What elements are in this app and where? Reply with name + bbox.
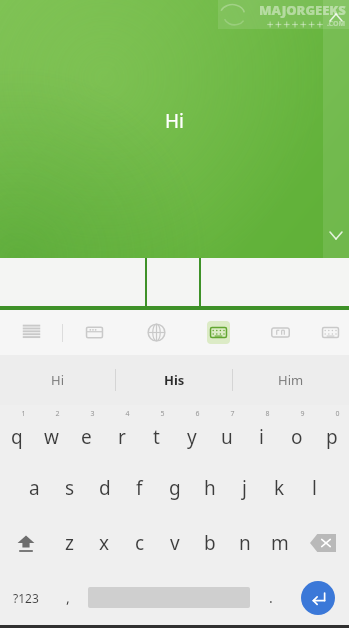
button[interactable]: g xyxy=(157,460,192,515)
staticText: z xyxy=(65,530,74,556)
button[interactable]: Scroll up xyxy=(325,6,347,28)
button[interactable]: Space xyxy=(84,570,254,625)
button[interactable]: Hi xyxy=(0,0,349,258)
button[interactable]: 0 xyxy=(314,405,349,460)
button[interactable]: b xyxy=(192,515,227,570)
button[interactable]: k xyxy=(262,460,297,515)
button[interactable]: z xyxy=(52,515,87,570)
staticText: 7 xyxy=(230,409,235,419)
button[interactable]: Enter xyxy=(287,570,349,625)
button[interactable]: Language xyxy=(125,310,187,355)
staticText: Hi xyxy=(165,108,184,134)
button[interactable]: j xyxy=(227,460,262,515)
staticText: d xyxy=(99,475,111,501)
button[interactable]: 1 xyxy=(0,405,34,460)
button[interactable]: h xyxy=(192,460,227,515)
staticText: p xyxy=(326,424,338,450)
staticText: MAJORGEEKS xyxy=(259,1,346,19)
button[interactable]: s xyxy=(52,460,87,515)
staticText: i xyxy=(259,424,264,450)
staticText: k xyxy=(274,475,285,501)
staticText: 4 xyxy=(125,409,130,419)
button[interactable]: 3 xyxy=(69,405,104,460)
staticText: 1 xyxy=(21,409,26,419)
button[interactable]: 5 xyxy=(139,405,174,460)
button[interactable]: Shift xyxy=(0,515,52,570)
button[interactable]: Backspace xyxy=(297,515,349,570)
button[interactable]: Menu xyxy=(0,310,62,355)
staticText: q xyxy=(11,424,23,450)
button[interactable]: f xyxy=(122,460,157,515)
staticText: . xyxy=(269,588,273,607)
staticText: ?123 xyxy=(13,590,39,606)
staticText: .COM xyxy=(327,19,346,29)
button[interactable]: Function keys xyxy=(249,310,311,355)
button[interactable]: 6 xyxy=(174,405,209,460)
staticText: w xyxy=(44,424,59,450)
staticText: o xyxy=(291,424,303,450)
button[interactable]: His xyxy=(116,355,232,405)
staticText: n xyxy=(239,530,251,556)
button[interactable]: 8 xyxy=(244,405,279,460)
button[interactable]: x xyxy=(87,515,122,570)
button[interactable]: Him xyxy=(233,355,349,405)
staticText: v xyxy=(170,530,180,556)
button[interactable]: 2 xyxy=(34,405,69,460)
button[interactable]: m xyxy=(262,515,297,570)
staticText: a xyxy=(29,475,40,501)
button[interactable]: c xyxy=(122,515,157,570)
staticText: His xyxy=(164,371,185,389)
staticText: 3 xyxy=(90,409,95,419)
button[interactable]: 9 xyxy=(279,405,314,460)
staticText: , xyxy=(66,588,70,607)
button[interactable]: 7 xyxy=(209,405,244,460)
staticText: t xyxy=(153,424,160,450)
button[interactable]: Comma xyxy=(51,570,84,625)
button[interactable]: a xyxy=(17,460,52,515)
staticText: m xyxy=(271,530,289,556)
staticText: u xyxy=(221,424,233,450)
staticText: b xyxy=(204,530,216,556)
staticText: 8 xyxy=(265,409,270,419)
button[interactable]: Period xyxy=(254,570,287,625)
staticText: s xyxy=(65,475,75,501)
button[interactable]: v xyxy=(157,515,192,570)
button[interactable]: Hi xyxy=(0,355,115,405)
staticText: Hi xyxy=(51,371,64,389)
button[interactable]: d xyxy=(87,460,122,515)
staticText: 0 xyxy=(335,409,340,419)
staticText: l xyxy=(312,475,317,501)
button[interactable]: ?123 xyxy=(0,570,51,625)
staticText: h xyxy=(204,475,216,501)
button[interactable]: Clipboard xyxy=(63,310,125,355)
button[interactable]: Scroll down xyxy=(325,224,347,246)
button[interactable]: 4 xyxy=(104,405,139,460)
staticText: 2 xyxy=(55,409,60,419)
staticText: 9 xyxy=(300,409,305,419)
button[interactable]: l xyxy=(297,460,332,515)
staticText: Him xyxy=(278,371,304,389)
staticText: f xyxy=(136,475,143,501)
staticText: x xyxy=(99,530,110,556)
staticText: c xyxy=(135,530,145,556)
staticText: 6 xyxy=(195,409,200,419)
staticText: g xyxy=(169,475,181,501)
staticText: y xyxy=(187,424,197,450)
staticText: e xyxy=(81,424,92,450)
staticText: 5 xyxy=(160,409,165,419)
button[interactable]: n xyxy=(227,515,262,570)
staticText: r xyxy=(118,424,126,450)
button[interactable]: Keyboard xyxy=(187,310,249,355)
button[interactable]: More xyxy=(311,310,349,355)
staticText: j xyxy=(242,475,247,501)
